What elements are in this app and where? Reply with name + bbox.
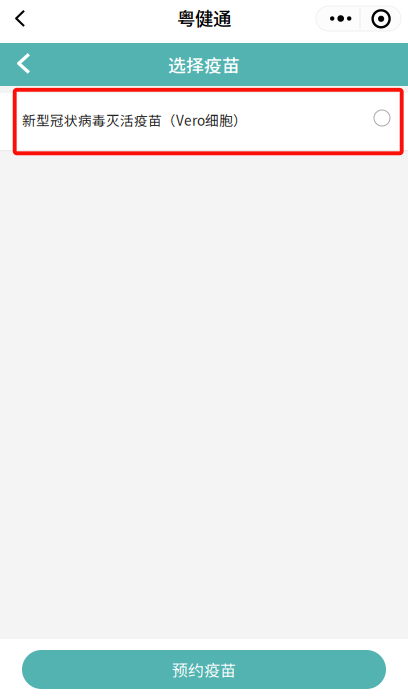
button[interactable]: Back (7, 44, 41, 82)
staticText: 预约疫苗 (172, 658, 236, 681)
staticText: 选择疫苗 (168, 52, 240, 77)
button[interactable]: Menu (316, 6, 401, 31)
button[interactable]: 预约疫苗 (22, 650, 386, 689)
button[interactable]: Back (4, 0, 36, 36)
staticText: 新型冠状病毒灭活疫苗（Vero细胞） (22, 110, 247, 130)
staticText: 粤健通 (177, 4, 231, 31)
button[interactable]: 新型冠状病毒灭活疫苗（Vero细胞） (0, 93, 408, 150)
